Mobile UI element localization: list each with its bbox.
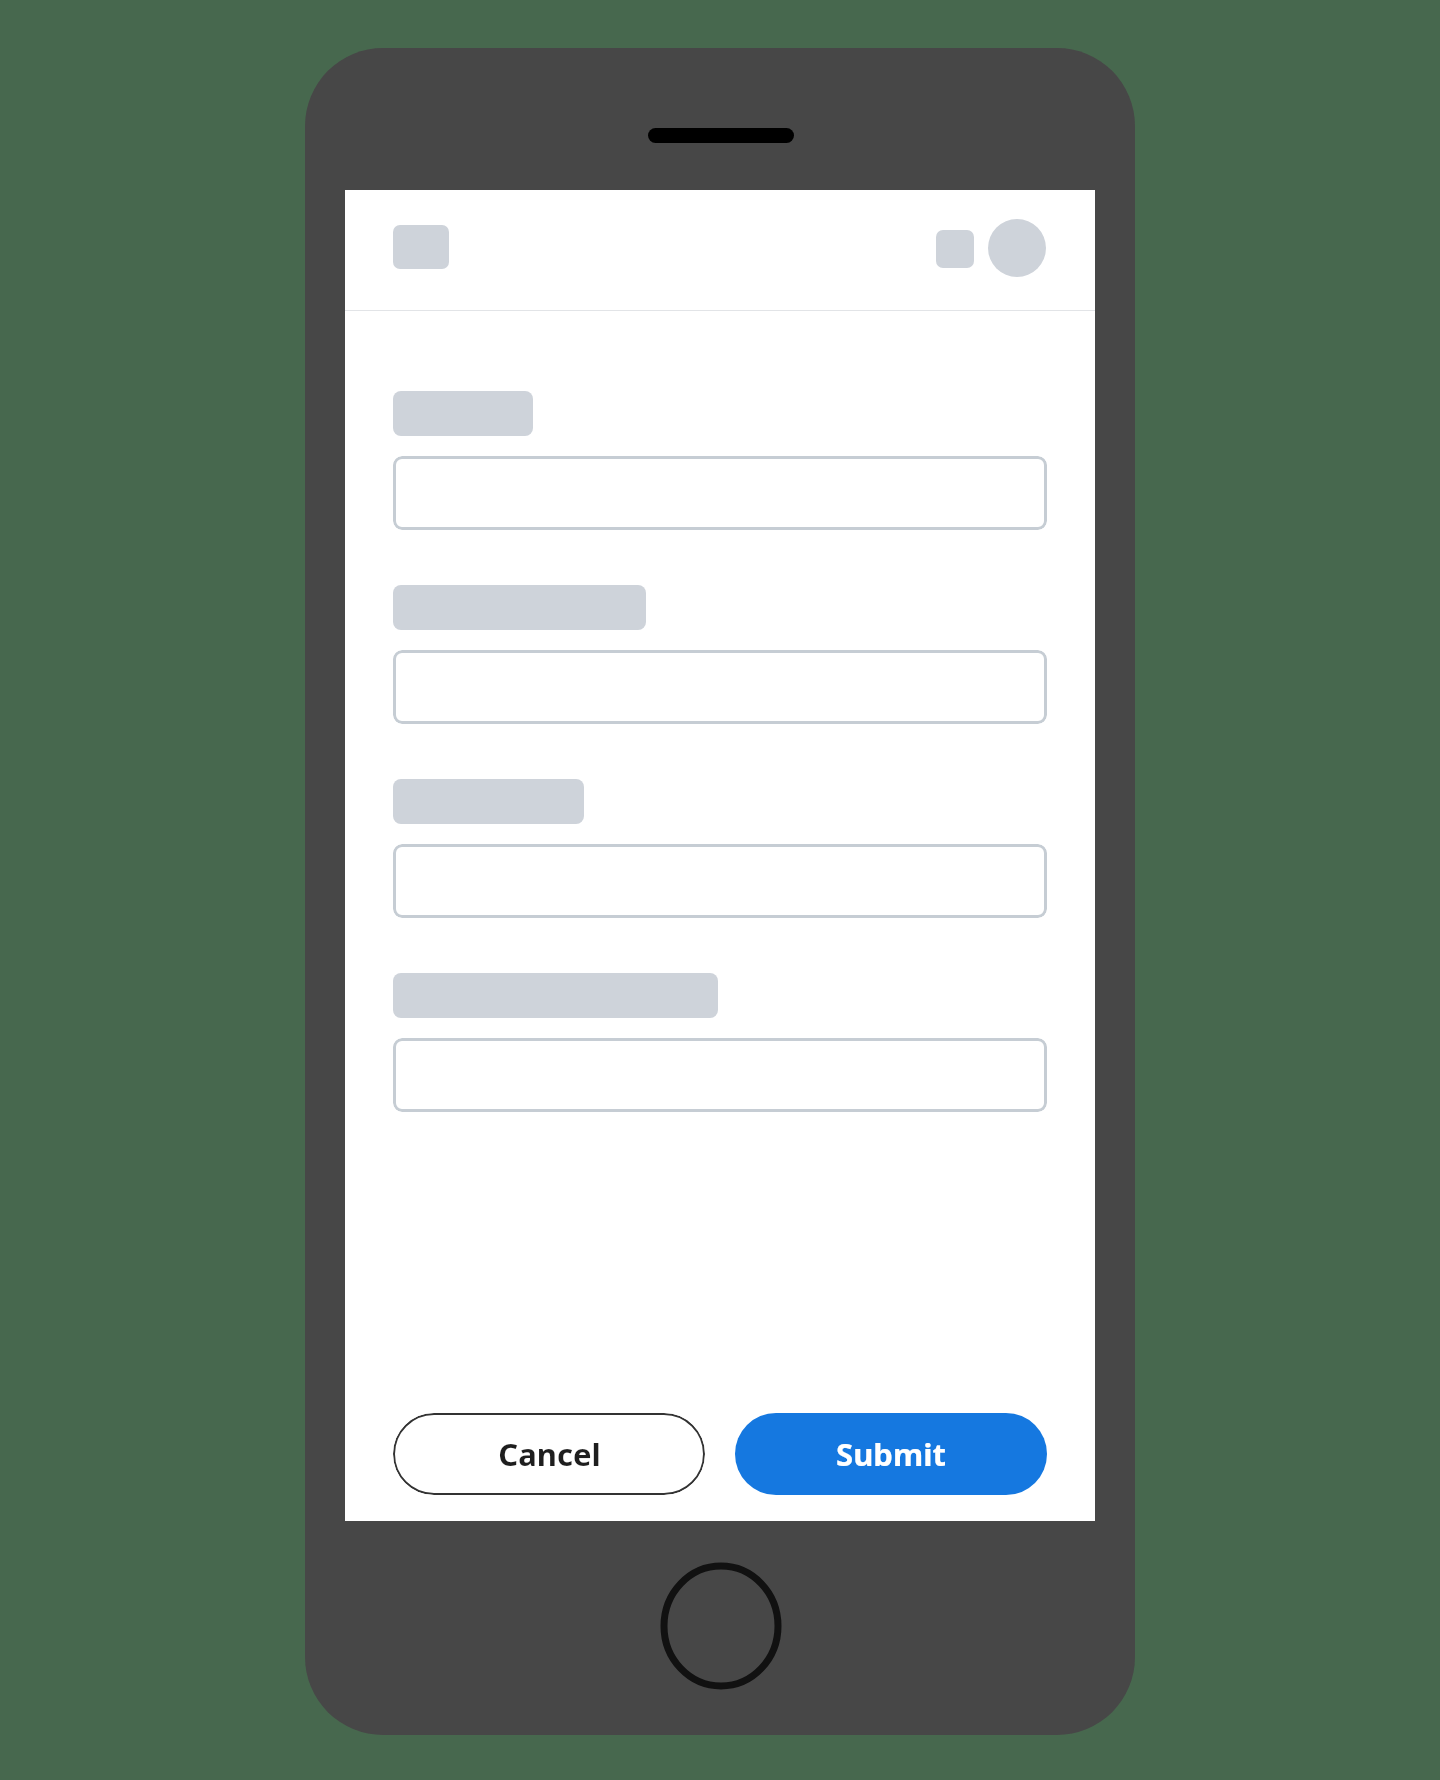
staticText: Submit bbox=[836, 1433, 946, 1475]
other: Home bbox=[660, 1562, 782, 1690]
button[interactable]: Text input bbox=[393, 456, 1047, 530]
button[interactable]: Text input bbox=[393, 650, 1047, 724]
button[interactable]: Account bbox=[988, 219, 1046, 277]
button[interactable]: Text input bbox=[393, 1038, 1047, 1112]
button[interactable]: Cancel bbox=[393, 1413, 705, 1495]
button[interactable]: Menu bbox=[936, 230, 974, 268]
button[interactable]: Logo bbox=[393, 225, 449, 269]
button[interactable]: Text input bbox=[393, 844, 1047, 918]
staticText: Cancel bbox=[498, 1433, 601, 1475]
button[interactable]: Submit bbox=[735, 1413, 1047, 1495]
